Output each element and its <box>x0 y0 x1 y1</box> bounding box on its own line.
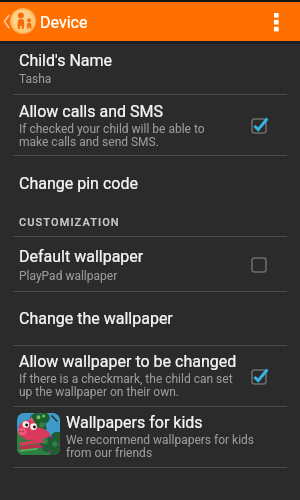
button[interactable] <box>0 407 300 468</box>
staticText: Tasha <box>19 72 52 86</box>
staticText: Wallpapers for kids <box>66 413 203 432</box>
button[interactable] <box>0 237 300 292</box>
staticText: CUSTOMIZATION <box>19 216 120 229</box>
staticText: Change pin code <box>19 174 138 193</box>
staticText: PlayPad wallpaper <box>19 269 118 283</box>
button[interactable] <box>0 292 300 346</box>
button[interactable]: Back <box>0 2 13 41</box>
staticText: We recommend wallpapers for kids from ou… <box>66 433 255 460</box>
staticText: Change the wallpaper <box>19 309 173 328</box>
button[interactable] <box>0 346 300 407</box>
button[interactable] <box>0 95 300 155</box>
button[interactable] <box>0 156 300 202</box>
button[interactable] <box>0 43 300 95</box>
staticText: Allow calls and SMS <box>19 102 163 121</box>
button[interactable]: More options <box>254 2 300 41</box>
staticText: Default wallpaper <box>19 247 144 266</box>
staticText: If there is a checkmark, the child can s… <box>19 372 233 399</box>
staticText: Device <box>40 13 88 32</box>
staticText: Child's Name <box>19 51 113 70</box>
staticText: Allow wallpaper to be changed <box>19 352 237 371</box>
staticText: If checked your child will be able to ma… <box>19 122 205 149</box>
